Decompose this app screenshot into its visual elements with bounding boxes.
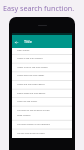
staticText: When are the trains? bbox=[17, 100, 38, 103]
staticText: Title bbox=[24, 39, 32, 44]
button[interactable]: Where does the train leave? bbox=[12, 71, 72, 80]
button[interactable]: The ticket station is not necessary bbox=[12, 120, 72, 129]
staticText: I want to go to the train station. bbox=[17, 66, 49, 69]
button[interactable]: Please make the train depart. bbox=[12, 89, 72, 97]
button[interactable]: I want to go to the train station. bbox=[12, 63, 72, 72]
staticText: Where are the ticket offices? bbox=[17, 83, 45, 86]
button[interactable]: Back bbox=[13, 39, 19, 45]
staticText: Easy search function. bbox=[3, 3, 75, 13]
staticText: Where is the train station? bbox=[17, 57, 43, 60]
staticText: Where does the train leave? bbox=[17, 74, 45, 77]
staticText: Train station bbox=[17, 49, 30, 52]
staticText: The ticket station is not necessary bbox=[17, 123, 51, 126]
button[interactable]: Train station bbox=[12, 47, 72, 54]
button[interactable]: Where is the train station? bbox=[12, 54, 72, 63]
staticText: Will the train arrive on time? bbox=[17, 132, 45, 135]
button[interactable]: The ticket to one of which to best three… bbox=[12, 106, 72, 120]
staticText: The ticket to one of which to best three… bbox=[17, 109, 50, 117]
button[interactable]: Where are the ticket offices? bbox=[12, 80, 72, 89]
button[interactable]: Will the train arrive on time? bbox=[12, 129, 72, 137]
staticText: Please make the train depart. bbox=[17, 92, 46, 95]
button[interactable]: Back bbox=[12, 35, 72, 48]
button[interactable]: When are the trains? bbox=[12, 97, 72, 106]
